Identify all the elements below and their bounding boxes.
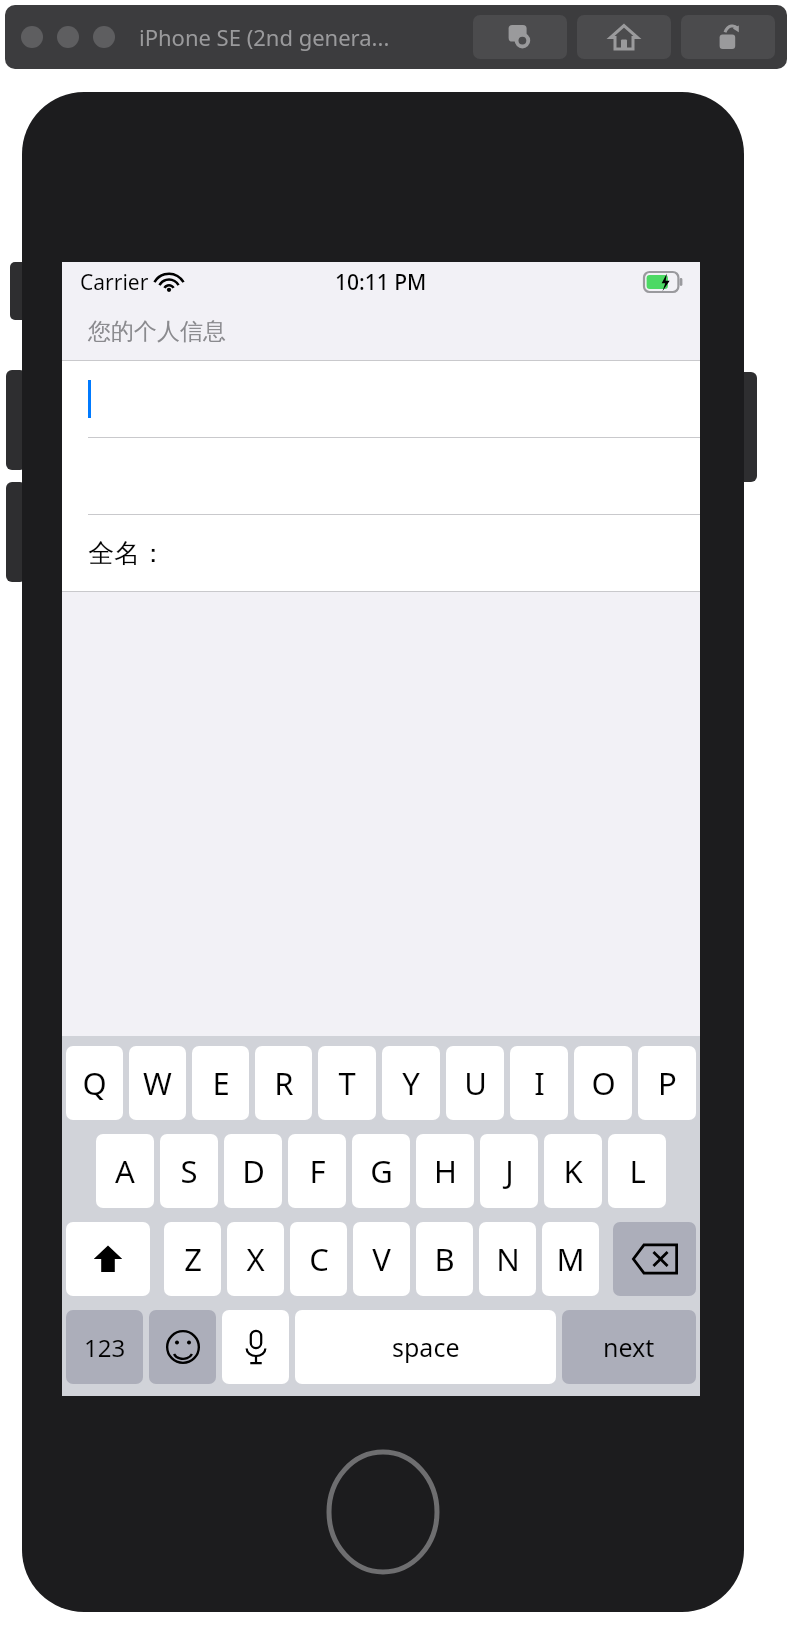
staticText: W	[143, 1062, 172, 1104]
button[interactable]: N	[479, 1222, 536, 1296]
staticText: iPhone SE (2nd genera...	[139, 22, 390, 52]
staticText: E	[212, 1062, 230, 1104]
staticText: M	[556, 1238, 585, 1280]
staticText: 10:11 PM	[335, 268, 427, 297]
button[interactable]	[93, 26, 115, 48]
staticText: O	[591, 1062, 616, 1104]
button[interactable]	[21, 26, 43, 48]
button[interactable]: X	[227, 1222, 284, 1296]
staticText: P	[658, 1062, 677, 1104]
staticText: 全名：	[88, 537, 166, 570]
button[interactable]: Share	[681, 15, 775, 59]
staticText: S	[180, 1150, 198, 1192]
button[interactable]: I	[510, 1046, 568, 1120]
button[interactable]: next	[562, 1310, 696, 1384]
button[interactable]	[57, 26, 79, 48]
button[interactable]: M	[542, 1222, 599, 1296]
staticText: T	[338, 1062, 356, 1104]
button[interactable]: L	[608, 1134, 666, 1208]
button[interactable]: K	[544, 1134, 602, 1208]
staticText: Carrier	[80, 268, 149, 297]
button[interactable]: F	[288, 1134, 346, 1208]
staticText: C	[309, 1238, 329, 1280]
button[interactable]: Emoji	[149, 1310, 216, 1384]
button[interactable]: Home	[577, 15, 671, 59]
button[interactable]: E	[192, 1046, 249, 1120]
button[interactable]: 全名：	[62, 515, 700, 591]
staticText: G	[370, 1150, 393, 1192]
staticText: 您的个人信息	[88, 317, 226, 346]
button[interactable]: space	[295, 1310, 556, 1384]
button[interactable]: B	[416, 1222, 473, 1296]
button[interactable]: S	[160, 1134, 218, 1208]
button[interactable]: Y	[382, 1046, 440, 1120]
staticText: H	[434, 1150, 457, 1192]
button[interactable]: U	[446, 1046, 504, 1120]
button[interactable]: T	[318, 1046, 376, 1120]
staticText: I	[534, 1062, 545, 1104]
button[interactable]: Shift	[66, 1222, 150, 1296]
button[interactable]: G	[352, 1134, 410, 1208]
button[interactable]: A	[96, 1134, 154, 1208]
button[interactable]	[62, 361, 700, 437]
staticText: D	[242, 1150, 265, 1192]
button[interactable]: H	[416, 1134, 474, 1208]
button[interactable]: Q	[66, 1046, 123, 1120]
staticText: U	[464, 1062, 487, 1104]
button[interactable]: D	[224, 1134, 282, 1208]
staticText: 123	[84, 1331, 126, 1364]
button[interactable]: Screenshot	[473, 15, 567, 59]
staticText: B	[434, 1238, 455, 1280]
staticText: X	[246, 1238, 265, 1280]
staticText: space	[392, 1330, 460, 1364]
button[interactable]: Z	[164, 1222, 221, 1296]
staticText: Z	[184, 1238, 202, 1280]
staticText: K	[563, 1150, 583, 1192]
button[interactable]: Dictate	[222, 1310, 289, 1384]
staticText: A	[115, 1150, 135, 1192]
staticText: J	[505, 1150, 514, 1192]
button[interactable]: 123	[66, 1310, 143, 1384]
staticText: next	[603, 1330, 655, 1364]
button[interactable]: W	[129, 1046, 186, 1120]
staticText: L	[629, 1150, 646, 1192]
button[interactable]: R	[255, 1046, 312, 1120]
button[interactable]: P	[638, 1046, 696, 1120]
staticText: Q	[82, 1062, 107, 1104]
staticText: F	[309, 1150, 326, 1192]
button[interactable]: C	[290, 1222, 347, 1296]
button[interactable]: Backspace	[613, 1222, 696, 1296]
staticText: V	[372, 1238, 391, 1280]
button[interactable]: J	[480, 1134, 538, 1208]
staticText: R	[274, 1062, 294, 1104]
staticText: N	[496, 1238, 520, 1280]
button[interactable]: V	[353, 1222, 410, 1296]
button[interactable]: O	[574, 1046, 632, 1120]
staticText: Y	[402, 1062, 420, 1104]
